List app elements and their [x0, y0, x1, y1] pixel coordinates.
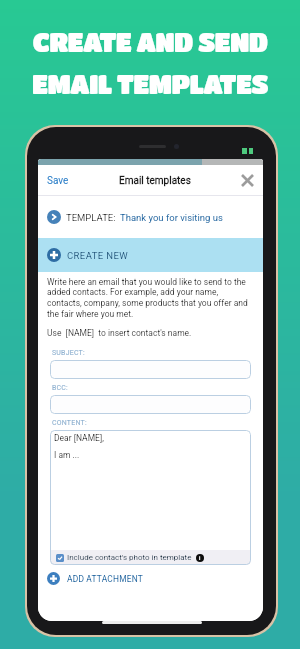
- button[interactable]: ADD ATTACHMENT: [47, 572, 143, 585]
- staticText: Use [NAME] to insert contact's name.: [47, 328, 192, 338]
- staticText: Save: [47, 175, 69, 187]
- staticText: I am ...: [54, 450, 80, 460]
- button[interactable]: Include contact's photo in template: [50, 550, 251, 565]
- button[interactable]: [50, 395, 251, 414]
- staticText: Include contact's photo in template: [67, 553, 192, 562]
- button[interactable]: CREATE NEW: [38, 238, 263, 272]
- staticText: SUBJECT:: [52, 349, 85, 357]
- staticText: CREATE NEW: [67, 250, 129, 261]
- staticText: Write here an email that you would like …: [47, 277, 254, 320]
- button[interactable]: TEMPLATE:: [38, 196, 263, 238]
- staticText: CONTENT:: [52, 419, 87, 427]
- staticText: BCC:: [52, 384, 68, 392]
- staticText: Email templates: [119, 175, 191, 187]
- staticText: i: [199, 555, 201, 561]
- staticText: Dear [NAME],: [54, 433, 104, 443]
- staticText: CREATE AND SEND: [0, 26, 300, 56]
- button[interactable]: Save: [38, 168, 78, 194]
- staticText: ADD ATTACHMENT: [67, 574, 143, 584]
- staticText: EMAIL TEMPLATES: [0, 68, 300, 98]
- staticText: Thank you for visiting us: [120, 212, 223, 223]
- button[interactable]: Close: [232, 165, 263, 196]
- staticText: TEMPLATE:: [66, 212, 116, 223]
- button[interactable]: [50, 360, 251, 379]
